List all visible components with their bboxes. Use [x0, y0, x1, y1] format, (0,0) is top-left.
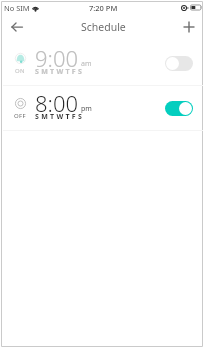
- staticText: OFF: [14, 112, 26, 120]
- button[interactable]: Add alarm: [175, 13, 203, 41]
- staticText: Schedule: [81, 20, 126, 34]
- staticText: 8:00: [35, 88, 79, 118]
- staticText: ON: [15, 67, 25, 75]
- button[interactable]: Back: [3, 13, 31, 41]
- staticText: No SIM: [4, 3, 30, 13]
- button[interactable]: ON: [3, 41, 203, 85]
- button[interactable]: Alarm off: [165, 56, 193, 71]
- button[interactable]: OFF: [3, 86, 203, 130]
- staticText: pm: [81, 104, 92, 114]
- staticText: 9:00: [35, 43, 79, 73]
- staticText: 7:20 PM: [89, 3, 118, 13]
- staticText: SMTWTFS: [35, 67, 85, 77]
- staticText: am: [81, 59, 92, 69]
- staticText: SMTWTFS: [35, 112, 85, 122]
- button[interactable]: Alarm on: [165, 101, 193, 116]
